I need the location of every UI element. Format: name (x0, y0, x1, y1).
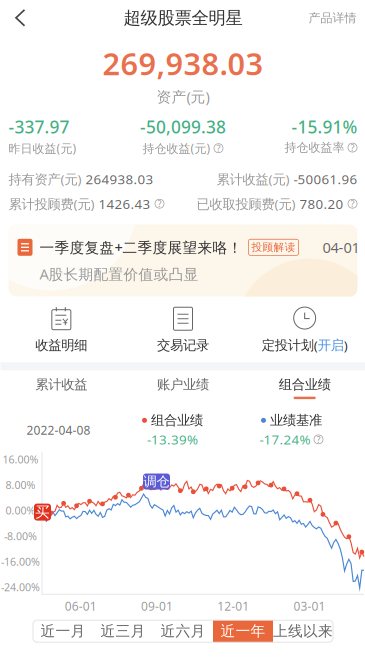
staticText: 8.00% (5, 478, 35, 492)
staticText: ? (316, 433, 320, 446)
staticText: 收益明细 (35, 337, 87, 354)
staticText: ? (216, 142, 220, 154)
staticText: 近一年 (220, 622, 265, 640)
staticText: ( (314, 337, 318, 354)
staticText: 买 (35, 503, 50, 521)
staticText: 业绩基准 (270, 412, 322, 429)
staticText: 已收取投顾费(元) (196, 195, 295, 213)
button[interactable]: 近三月 (93, 620, 153, 642)
staticText: ) (344, 337, 348, 354)
staticText: 2022-04-08 (26, 422, 90, 438)
staticText: 账户业绩 (157, 376, 209, 393)
staticText: -24.00% (1, 580, 40, 594)
staticText: 12-01 (217, 598, 249, 614)
staticText: 03-01 (293, 598, 325, 614)
staticText: 组合业绩 (279, 376, 331, 393)
staticText: ? (157, 197, 161, 210)
staticText: ? (350, 197, 354, 210)
staticText: 持有资产(元) (8, 170, 81, 188)
staticText: 交易记录 (157, 337, 209, 354)
staticText: 06-01 (65, 598, 97, 614)
button[interactable]: 交易记录 (122, 307, 244, 354)
staticText: -17.24% (259, 430, 310, 448)
staticText: 持仓收益(元) (142, 140, 210, 156)
staticText: -50,099.38 (140, 115, 226, 138)
staticText: -15.91% (291, 115, 357, 138)
staticText: 开启 (318, 337, 344, 354)
button[interactable]: 组合业绩 (244, 370, 365, 405)
staticText: 调仓 (143, 473, 169, 490)
staticText: ? (350, 141, 354, 154)
staticText: 04-01 (322, 238, 359, 257)
staticText: 16.00% (2, 452, 38, 466)
staticText: 近六月 (160, 622, 205, 640)
button[interactable]: 近一月 (33, 620, 93, 642)
staticText: 1426.43 (98, 195, 150, 213)
staticText: 组合业绩 (151, 412, 203, 429)
staticText: 定投计划 (262, 337, 314, 354)
staticText: 投顾解读 (251, 241, 295, 254)
staticText: 资产(元) (156, 87, 209, 106)
button[interactable]: 一季度复盘+二季度展望来咯！ (8, 225, 357, 297)
staticText: 昨日收益(元) (8, 140, 76, 156)
staticText: 269,938.03 (102, 43, 263, 84)
staticText: 累计投顾费(元) (8, 195, 94, 213)
staticText: 持仓收益率 (284, 140, 344, 155)
button[interactable]: 产品详情 (308, 0, 365, 36)
staticText: -337.97 (8, 115, 69, 138)
staticText: 上线以来 (273, 622, 333, 640)
button[interactable]: 定投计划 (244, 307, 365, 354)
button[interactable]: 上线以来 (273, 620, 333, 642)
staticText: 近一月 (40, 622, 85, 640)
button[interactable]: 账户业绩 (122, 370, 244, 405)
button[interactable]: 返回 (0, 0, 40, 36)
staticText: 超级股票全明星 (123, 7, 242, 29)
staticText: A股长期配置价值或凸显 (39, 264, 198, 284)
button[interactable]: 收益明细 (0, 307, 122, 354)
staticText: 09-01 (141, 598, 173, 614)
staticText: -8.00% (4, 529, 37, 543)
staticText: -13.39% (147, 430, 198, 448)
staticText: 累计收益(元) (216, 170, 289, 188)
staticText: 264938.03 (85, 170, 153, 188)
staticText: 一季度复盘+二季度展望来咯！ (39, 238, 242, 257)
staticText: 0.00% (5, 503, 35, 518)
button[interactable]: 近六月 (153, 620, 213, 642)
button[interactable]: 累计收益 (0, 370, 122, 405)
staticText: 产品详情 (308, 11, 356, 25)
button[interactable]: 近一年 (213, 620, 273, 642)
staticText: 近三月 (100, 622, 145, 640)
staticText: 累计收益 (35, 376, 87, 393)
staticText: 780.20 (299, 195, 343, 213)
staticText: -50061.96 (293, 170, 357, 188)
staticText: -16.00% (1, 554, 40, 569)
